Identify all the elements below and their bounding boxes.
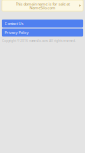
staticText: NameSilo.com (29, 5, 55, 10)
staticText: Privacy Policy (5, 30, 29, 35)
button[interactable]: Privacy Policy (2, 28, 83, 36)
staticText: Contact Us (5, 21, 24, 26)
button[interactable]: Contact Us (2, 19, 83, 27)
button[interactable]: This domain name is for sale at (2, 0, 83, 11)
staticText: This domain name is for sale at (15, 1, 69, 6)
staticText: Copyright © 2016 namesilo.com. All right… (2, 39, 76, 43)
